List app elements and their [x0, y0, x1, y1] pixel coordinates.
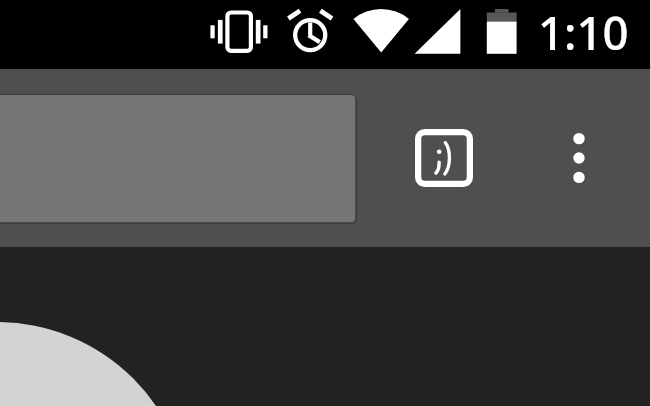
staticText: 1:10 [538, 1, 629, 63]
button[interactable]: Send message [0, 92, 359, 226]
button[interactable]: Insert emoticon [404, 118, 484, 198]
button[interactable]: More options [549, 118, 609, 198]
